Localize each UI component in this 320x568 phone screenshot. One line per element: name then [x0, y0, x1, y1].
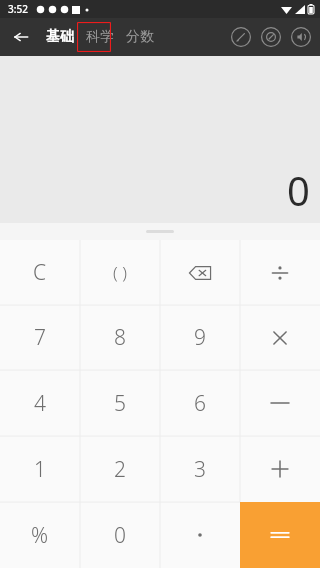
button[interactable]: Back: [8, 24, 34, 50]
button[interactable]: 2: [80, 436, 160, 502]
button[interactable]: 5: [80, 370, 160, 436]
button[interactable]: [160, 502, 240, 568]
button[interactable]: 科学: [80, 24, 120, 50]
button[interactable]: 分数: [120, 24, 160, 50]
button[interactable]: [240, 436, 320, 502]
staticText: 科学: [86, 28, 114, 46]
staticText: 0: [114, 521, 126, 550]
button[interactable]: 基础: [40, 24, 80, 50]
button[interactable]: 3: [160, 436, 240, 502]
button[interactable]: [240, 240, 320, 305]
staticText: 3: [194, 455, 206, 484]
button[interactable]: C: [0, 240, 80, 305]
button[interactable]: %: [0, 502, 80, 568]
button[interactable]: 7: [0, 305, 80, 370]
staticText: C: [33, 258, 47, 287]
button[interactable]: [240, 370, 320, 436]
staticText: 5: [114, 389, 126, 418]
staticText: 3:52: [8, 2, 28, 16]
staticText: 7: [34, 323, 46, 352]
button[interactable]: [160, 240, 240, 305]
button[interactable]: [240, 305, 320, 370]
staticText: 基础: [46, 28, 74, 46]
button[interactable]: 4: [0, 370, 80, 436]
button[interactable]: History: [256, 22, 286, 52]
staticText: 分数: [126, 28, 154, 46]
staticText: %: [31, 521, 49, 550]
staticText: 8: [114, 323, 126, 352]
button[interactable]: [240, 502, 320, 568]
staticText: 1: [34, 455, 46, 484]
button[interactable]: 9: [160, 305, 240, 370]
button[interactable]: ( ): [80, 240, 160, 305]
staticText: ( ): [113, 261, 127, 284]
staticText: 0: [287, 163, 310, 217]
button[interactable]: 0: [80, 502, 160, 568]
button[interactable]: 8: [80, 305, 160, 370]
staticText: 4: [34, 389, 46, 418]
staticText: 9: [194, 323, 206, 352]
staticText: 2: [114, 455, 126, 484]
button[interactable]: 1: [0, 436, 80, 502]
button[interactable]: Edit: [226, 22, 256, 52]
staticText: 6: [194, 389, 206, 418]
button[interactable]: Sound: [286, 22, 316, 52]
button[interactable]: 6: [160, 370, 240, 436]
